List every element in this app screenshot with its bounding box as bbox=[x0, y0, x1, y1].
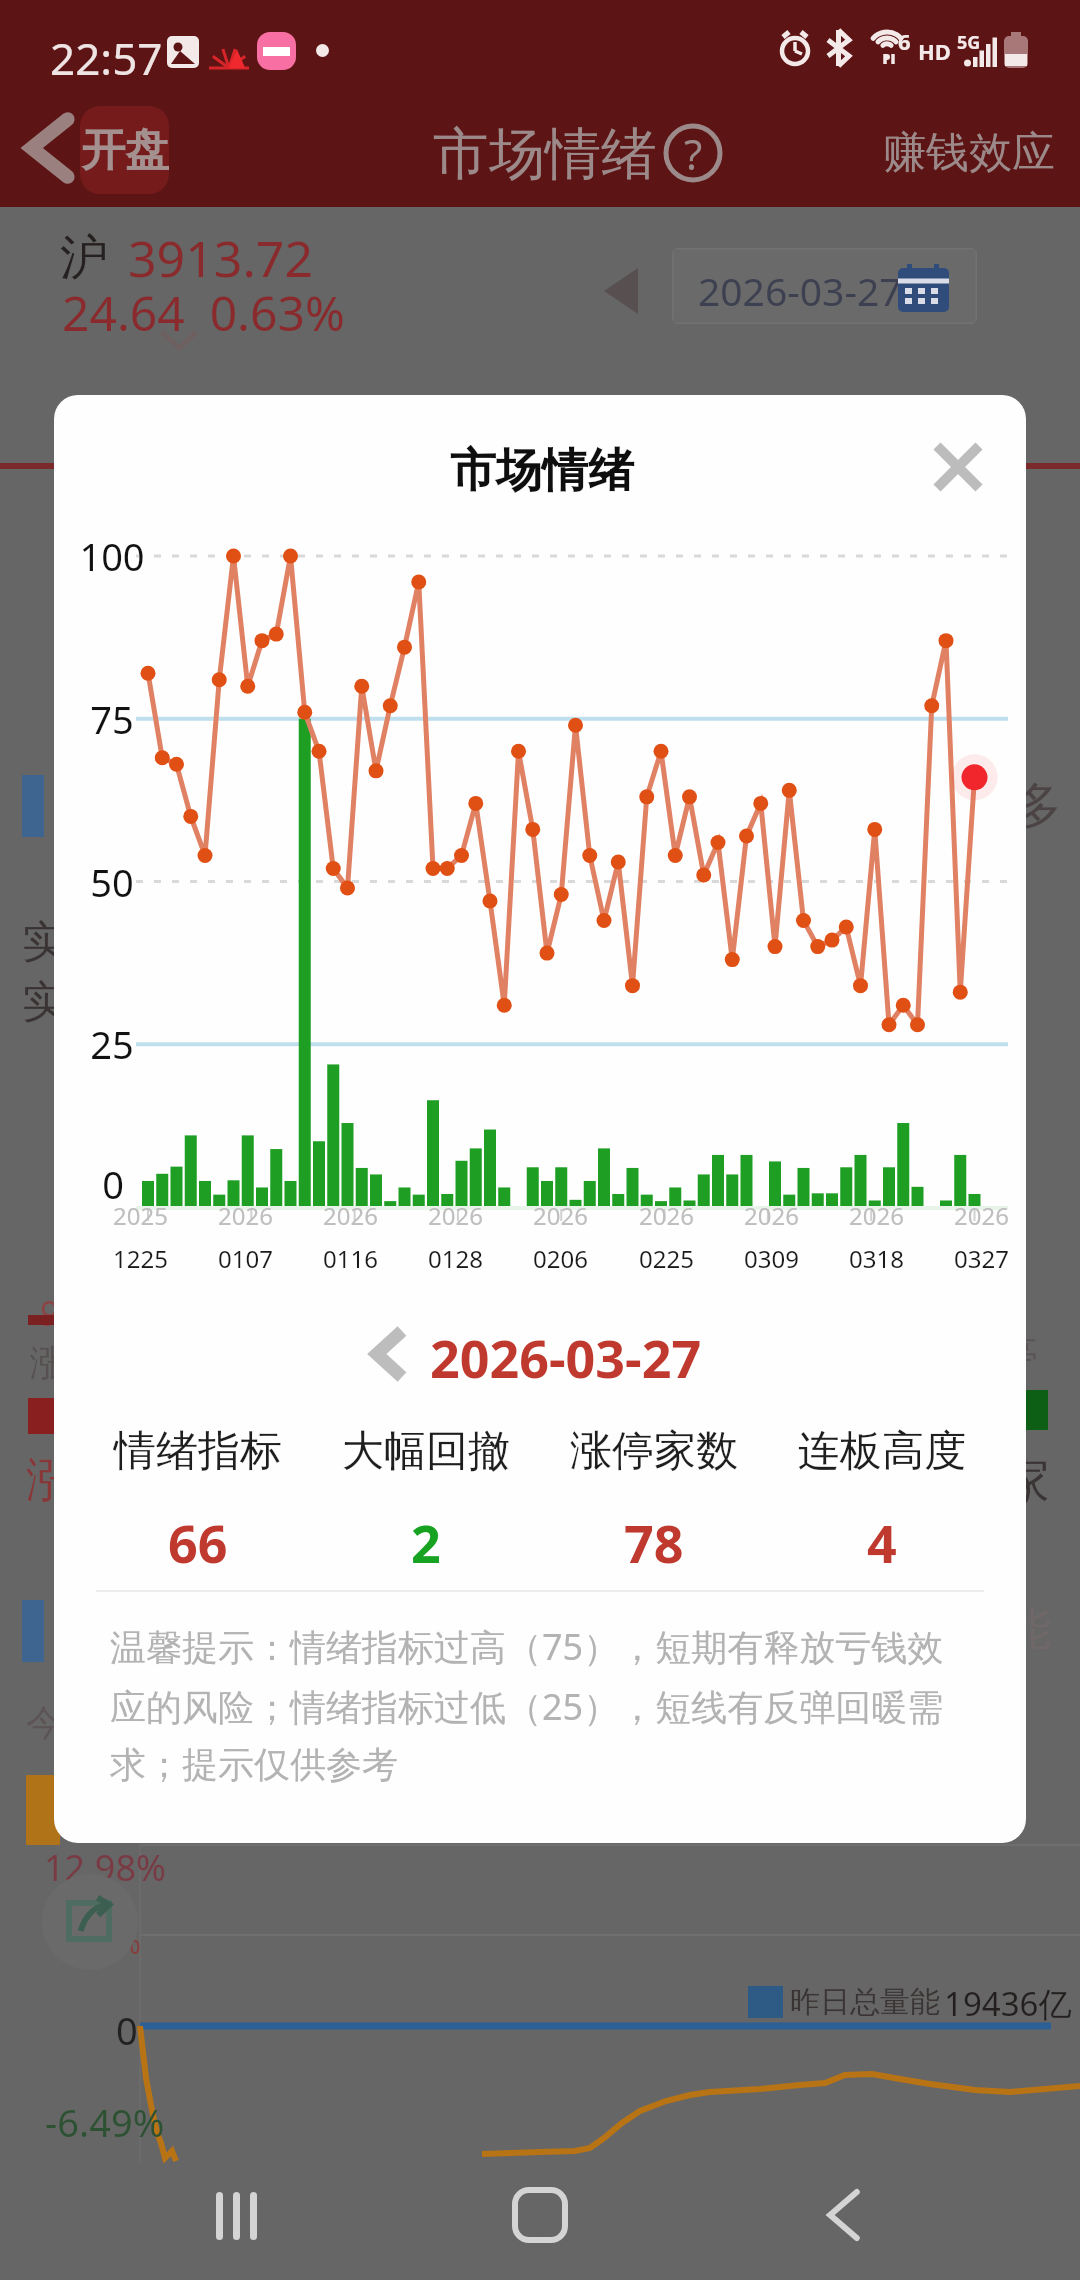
button[interactable]: Previous day bbox=[360, 1325, 420, 1383]
button[interactable]: 连板高度 bbox=[768, 1425, 996, 1578]
staticText: 6 bbox=[898, 26, 911, 56]
button[interactable]: Home bbox=[515, 2190, 565, 2240]
staticText: 0318 bbox=[849, 1242, 904, 1275]
staticText: 2025 bbox=[113, 1199, 168, 1232]
button[interactable]: 涨停家数 bbox=[540, 1425, 768, 1578]
staticText: ? bbox=[684, 125, 703, 182]
staticText: 0107 bbox=[218, 1242, 273, 1275]
button[interactable] bbox=[672, 248, 977, 324]
staticText: 实 bbox=[22, 915, 66, 970]
staticText: 3913.72 bbox=[128, 224, 313, 292]
button[interactable]: Back bbox=[18, 112, 80, 184]
button[interactable]: Back bbox=[820, 2190, 866, 2240]
staticText: 2 bbox=[411, 1507, 441, 1578]
button[interactable]: 开盘 bbox=[80, 106, 169, 194]
staticText: 0225 bbox=[639, 1242, 694, 1275]
staticText: 22:57 bbox=[50, 28, 163, 88]
staticText: 赚钱效应 bbox=[883, 126, 1055, 180]
staticText: 2026-03-27 bbox=[430, 1322, 702, 1393]
staticText: 0116 bbox=[323, 1242, 378, 1275]
staticText: 100 bbox=[52, 530, 172, 582]
staticText: 0309 bbox=[744, 1242, 799, 1275]
button[interactable]: Close bbox=[916, 425, 1000, 509]
button[interactable]: Share bbox=[42, 1874, 138, 1970]
staticText: 2026 bbox=[218, 1199, 273, 1232]
staticText: 涨 bbox=[26, 1450, 74, 1510]
staticText: 多 bbox=[1012, 775, 1062, 838]
staticText: 0206 bbox=[533, 1242, 588, 1275]
staticText: 2026 bbox=[849, 1199, 904, 1232]
button[interactable]: Recents bbox=[216, 2192, 262, 2240]
staticText: 75 bbox=[52, 693, 172, 745]
staticText: 沪 bbox=[60, 228, 108, 288]
staticText: 连板高度 bbox=[798, 1425, 966, 1478]
button[interactable]: 大幅回撤 bbox=[312, 1425, 540, 1578]
staticText: 2026 bbox=[744, 1199, 799, 1232]
staticText: 实 bbox=[22, 975, 66, 1030]
staticText: 2026-03-27 bbox=[698, 264, 902, 317]
staticText: 能 bbox=[1005, 1600, 1051, 1658]
button[interactable]: Help bbox=[664, 124, 722, 182]
staticText: 0 bbox=[116, 2004, 138, 2056]
staticText: 0 bbox=[53, 1158, 173, 1210]
staticText: 涨停家数 bbox=[570, 1425, 738, 1478]
staticText: 2026 bbox=[533, 1199, 588, 1232]
staticText: 涨 bbox=[30, 1340, 66, 1385]
staticText: 0128 bbox=[428, 1242, 483, 1275]
staticText: 24.64 0.63% bbox=[62, 280, 345, 345]
staticText: 4 bbox=[867, 1507, 897, 1578]
staticText: 市场情绪 bbox=[450, 442, 634, 500]
staticText: -6.49% bbox=[45, 2096, 165, 2148]
staticText: 今 bbox=[26, 1700, 62, 1745]
staticText: 19436亿 bbox=[944, 1981, 1072, 2026]
staticText: 2026 bbox=[428, 1199, 483, 1232]
staticText: 9 bbox=[40, 1290, 60, 1336]
staticText: % bbox=[116, 1922, 141, 1963]
staticText: 0327 bbox=[954, 1242, 1009, 1275]
staticText: 2026 bbox=[323, 1199, 378, 1232]
staticText: 78 bbox=[624, 1507, 684, 1578]
staticText: 2026 bbox=[954, 1199, 1009, 1232]
staticText: 12.98% bbox=[44, 1843, 166, 1892]
staticText: 1225 bbox=[113, 1242, 168, 1275]
staticText: 情绪指标 bbox=[114, 1425, 282, 1478]
staticText: 5G bbox=[957, 30, 981, 55]
staticText: 市场情绪 bbox=[433, 119, 657, 190]
staticText: HD bbox=[918, 36, 951, 66]
staticText: 温馨提示：情绪指标过高（75），短期有释放亏钱效应的风险；情绪指标过低（25），… bbox=[110, 1622, 962, 1787]
staticText: 2026 bbox=[639, 1199, 694, 1232]
staticText: 昨日总量能 bbox=[790, 1983, 940, 2021]
button[interactable]: 情绪指标 bbox=[84, 1425, 312, 1578]
staticText: 亭 bbox=[1000, 1330, 1038, 1378]
staticText: 50 bbox=[52, 856, 172, 908]
staticText: 家 bbox=[1000, 1450, 1050, 1513]
staticText: 25 bbox=[52, 1018, 172, 1070]
staticText: 开盘 bbox=[81, 123, 169, 178]
staticText: 大幅回撤 bbox=[342, 1425, 510, 1478]
staticText: 66 bbox=[168, 1507, 228, 1578]
